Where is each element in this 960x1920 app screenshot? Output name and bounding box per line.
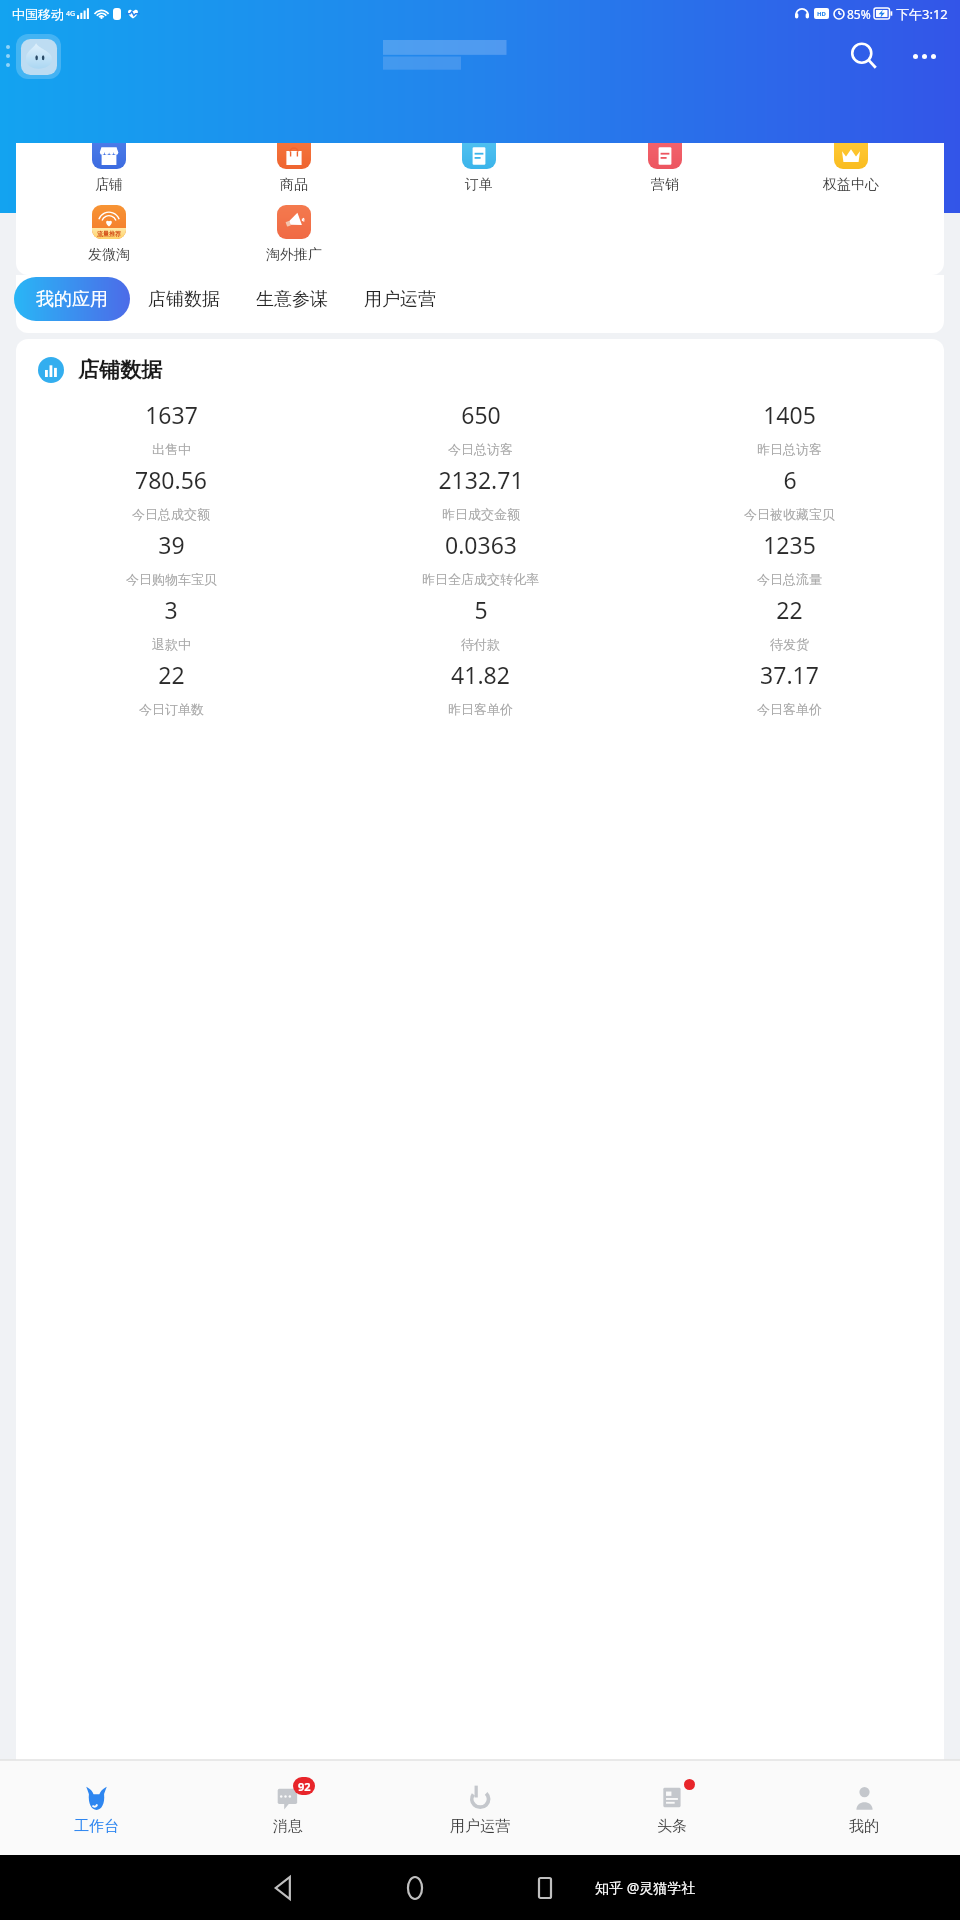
staticText: 退款中 bbox=[152, 636, 191, 652]
button[interactable]: 商品 bbox=[201, 143, 386, 205]
staticText: 今日被收藏宝贝 bbox=[744, 506, 835, 522]
button[interactable]: 用户运营 bbox=[346, 277, 454, 321]
button[interactable]: 37.17 bbox=[635, 659, 944, 724]
staticText: 店铺 bbox=[95, 176, 123, 194]
button[interactable]: 头条 bbox=[576, 1760, 768, 1855]
staticText: 3 bbox=[164, 594, 178, 625]
button[interactable]: 店铺数据 bbox=[38, 357, 944, 383]
staticText: 今日总成交额 bbox=[132, 506, 210, 522]
button[interactable]: 0.0363 bbox=[326, 529, 635, 594]
staticText: 今日总流量 bbox=[757, 571, 822, 587]
staticText: 知乎 @灵猫学社 bbox=[595, 1878, 696, 1897]
button[interactable]: 1637 bbox=[16, 399, 326, 464]
staticText: 1637 bbox=[145, 399, 198, 430]
button[interactable]: 1405 bbox=[635, 399, 944, 464]
button[interactable]: 我的应用 bbox=[14, 277, 130, 321]
button[interactable]: Back bbox=[250, 1855, 320, 1920]
staticText: 1405 bbox=[763, 399, 816, 430]
staticText: 权益中心 bbox=[823, 176, 879, 194]
staticText: 5 bbox=[474, 594, 488, 625]
button[interactable]: Search bbox=[836, 28, 892, 84]
button[interactable]: 650 bbox=[326, 399, 635, 464]
staticText: 营销 bbox=[651, 176, 679, 194]
staticText: 今日总访客 bbox=[448, 441, 513, 457]
staticText: 85% bbox=[847, 6, 871, 22]
staticText: 工作台 bbox=[74, 1817, 119, 1836]
staticText: 用户运营 bbox=[450, 1817, 510, 1836]
staticText: 我的应用 bbox=[36, 288, 108, 311]
button[interactable]: 流量推荐 bbox=[16, 205, 201, 273]
button[interactable]: 淘外推广 bbox=[201, 205, 386, 273]
staticText: 4G bbox=[66, 9, 76, 19]
staticText: 待付款 bbox=[461, 636, 500, 652]
staticText: 淘外推广 bbox=[266, 246, 322, 264]
staticText: 今日订单数 bbox=[139, 701, 204, 717]
button[interactable]: 2132.71 bbox=[326, 464, 635, 529]
staticText: 店铺数据 bbox=[78, 357, 162, 383]
staticText: 6 bbox=[783, 464, 797, 495]
button[interactable]: 6 bbox=[635, 464, 944, 529]
button[interactable]: 店铺数据 bbox=[130, 277, 238, 321]
staticText: 今日购物车宝贝 bbox=[126, 571, 217, 587]
button[interactable]: 5 bbox=[326, 594, 635, 659]
staticText: 中国移动 bbox=[12, 6, 64, 22]
staticText: 1235 bbox=[763, 529, 816, 560]
staticText: 我的 bbox=[849, 1817, 879, 1836]
staticText: 头条 bbox=[657, 1817, 687, 1836]
staticText: 商品 bbox=[280, 176, 308, 194]
staticText: HD bbox=[817, 10, 826, 18]
staticText: 订单 bbox=[465, 176, 493, 194]
staticText: 昨日全店成交转化率 bbox=[422, 571, 539, 587]
staticText: 2132.71 bbox=[438, 464, 524, 495]
button[interactable]: 生意参谋 bbox=[238, 277, 346, 321]
button[interactable]: Recent apps bbox=[510, 1855, 580, 1920]
button[interactable]: 92 bbox=[192, 1760, 384, 1855]
staticText: 消息 bbox=[273, 1817, 303, 1836]
button[interactable]: 22 bbox=[16, 659, 326, 724]
staticText: 37.17 bbox=[760, 659, 819, 690]
button[interactable]: 3 bbox=[16, 594, 326, 659]
staticText: 92 bbox=[298, 1779, 311, 1794]
staticText: 22 bbox=[776, 594, 803, 625]
staticText: 昨日成交金额 bbox=[442, 506, 520, 522]
staticText: 39 bbox=[158, 529, 185, 560]
button[interactable]: 店铺 bbox=[16, 143, 201, 205]
button[interactable]: Home bbox=[380, 1855, 450, 1920]
button[interactable]: 22 bbox=[635, 594, 944, 659]
staticText: 22 bbox=[158, 659, 185, 690]
button[interactable]: 我的 bbox=[768, 1760, 960, 1855]
button[interactable]: 780.56 bbox=[16, 464, 326, 529]
staticText: 昨日客单价 bbox=[448, 701, 513, 717]
staticText: 用户运营 bbox=[364, 288, 436, 311]
button[interactable]: 订单 bbox=[386, 143, 572, 205]
staticText: 650 bbox=[461, 399, 501, 430]
staticText: 下午3:12 bbox=[896, 5, 948, 23]
staticText: 待发货 bbox=[770, 636, 809, 652]
staticText: 0.0363 bbox=[445, 529, 517, 560]
button[interactable]: 工作台 bbox=[0, 1760, 192, 1855]
button[interactable]: 1235 bbox=[635, 529, 944, 594]
staticText: 流量推荐 bbox=[97, 230, 121, 238]
button[interactable]: 营销 bbox=[572, 143, 758, 205]
staticText: 店铺数据 bbox=[148, 288, 220, 311]
button[interactable]: 39 bbox=[16, 529, 326, 594]
staticText: 今日客单价 bbox=[757, 701, 822, 717]
staticText: 生意参谋 bbox=[256, 288, 328, 311]
button[interactable]: 权益中心 bbox=[758, 143, 944, 205]
button[interactable]: More options bbox=[896, 28, 952, 84]
staticText: 发微淘 bbox=[88, 246, 130, 264]
staticText: 41.82 bbox=[451, 659, 510, 690]
button[interactable]: 用户运营 bbox=[384, 1760, 576, 1855]
button[interactable]: 41.82 bbox=[326, 659, 635, 724]
staticText: 昨日总访客 bbox=[757, 441, 822, 457]
button[interactable]: Account avatar bbox=[16, 34, 61, 79]
staticText: 出售中 bbox=[152, 441, 191, 457]
staticText: 780.56 bbox=[135, 464, 207, 495]
